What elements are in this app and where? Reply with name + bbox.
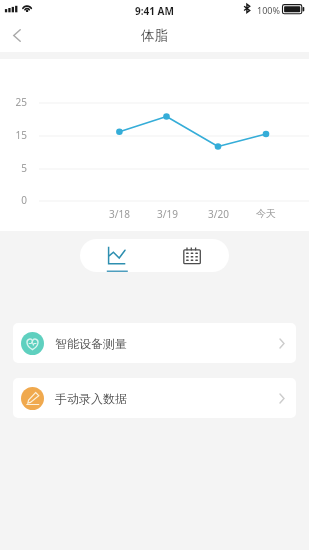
staticText: 3/18 [109,207,130,221]
staticText: 15 [15,128,27,142]
staticText: 0 [21,193,27,207]
staticText: 100% [257,4,280,16]
staticText: 3/20 [208,207,229,221]
staticText: 今天 [256,207,276,220]
button[interactable]: 智能设备测量 [13,323,296,363]
staticText: 智能设备测量 [55,336,127,351]
staticText: 9:41 AM [135,4,174,18]
button[interactable]: Back [0,22,33,52]
staticText: 体脂 [141,27,168,44]
button[interactable]: 手动录入数据 [13,378,296,418]
staticText: 25 [15,95,27,109]
button[interactable]: Chart view [80,239,154,272]
staticText: 3/19 [157,207,178,221]
button[interactable]: Calendar view [154,239,229,272]
staticText: 5 [21,161,27,175]
staticText: 手动录入数据 [55,391,127,406]
